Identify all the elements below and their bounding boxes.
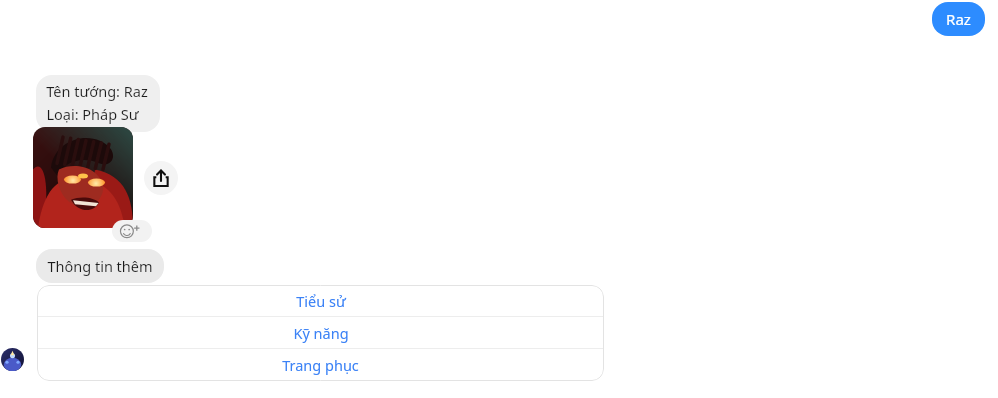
button[interactable]: Hình ảnh tướng Raz: [33, 127, 133, 228]
button[interactable]: Thông tin thêm: [36, 249, 164, 283]
button[interactable]: Ảnh đại diện: [1, 348, 24, 371]
staticText: Tên tướng: Raz: [46, 81, 148, 101]
staticText: Tiểu sử: [296, 291, 346, 311]
button[interactable]: Raz: [932, 2, 985, 36]
staticText: Trang phục: [282, 355, 359, 375]
button[interactable]: Trang phục: [37, 349, 604, 380]
staticText: Kỹ năng: [293, 323, 349, 343]
button[interactable]: Kỹ năng: [37, 317, 604, 348]
staticText: Thông tin thêm: [47, 256, 153, 276]
button[interactable]: Tiểu sử: [37, 285, 604, 316]
button[interactable]: Tên tướng: Raz: [36, 75, 160, 132]
staticText: Raz: [946, 9, 971, 29]
button[interactable]: Chia sẻ: [144, 161, 178, 195]
staticText: Loại: Pháp Sư: [46, 104, 139, 124]
button[interactable]: Thêm biểu cảm: [112, 220, 152, 242]
